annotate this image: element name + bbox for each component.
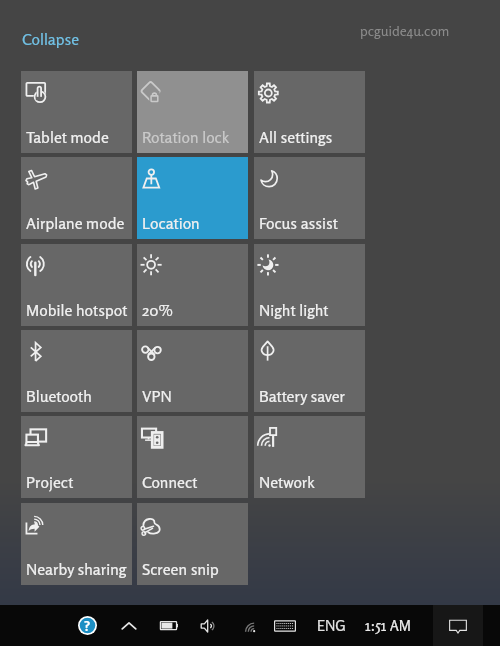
staticText: Collapse	[22, 30, 80, 49]
button[interactable]: Airplane mode	[21, 157, 132, 239]
staticText: ENG	[317, 617, 346, 635]
staticText: Airplane mode	[26, 214, 125, 233]
staticText: Bluetooth	[26, 387, 92, 406]
staticText: Night light	[259, 301, 329, 320]
button[interactable]: Network	[254, 416, 365, 498]
staticText: Battery saver	[259, 387, 346, 406]
staticText: Location	[142, 214, 200, 233]
staticText: Connect	[142, 473, 198, 492]
button[interactable]: Battery saver	[254, 330, 365, 412]
button[interactable]: 20%	[137, 244, 248, 326]
staticText: 20%	[142, 301, 173, 320]
staticText: Rotation lock	[142, 128, 230, 147]
staticText: Project	[26, 473, 74, 492]
button[interactable]: Action Center	[433, 605, 483, 646]
staticText: 1:51 AM	[365, 617, 411, 635]
staticText: ?	[84, 617, 91, 634]
button[interactable]: Network	[233, 605, 267, 646]
staticText: Focus assist	[259, 214, 338, 233]
button[interactable]: Project	[21, 416, 132, 498]
button[interactable]: All settings	[254, 71, 365, 153]
staticText: VPN	[142, 387, 172, 406]
button[interactable]: Screen snip	[137, 503, 248, 585]
button[interactable]: Focus assist	[254, 157, 365, 239]
staticText: Nearby sharing	[26, 560, 127, 579]
button[interactable]: Location	[137, 157, 248, 239]
button[interactable]: Show hidden icons	[112, 605, 146, 646]
button[interactable]: VPN	[137, 330, 248, 412]
button[interactable]: Bluetooth	[21, 330, 132, 412]
button[interactable]: Night light	[254, 244, 365, 326]
staticText: Mobile hotspot	[26, 301, 128, 320]
button[interactable]: Battery	[152, 605, 186, 646]
staticText: All settings	[259, 128, 333, 147]
button[interactable]: Help	[70, 605, 104, 646]
button[interactable]: Volume	[192, 605, 226, 646]
button[interactable]: Connect	[137, 416, 248, 498]
button[interactable]: Collapse	[16, 26, 86, 53]
staticText: Network	[259, 473, 315, 492]
button[interactable]: Mobile hotspot	[21, 244, 132, 326]
staticText: Screen snip	[142, 560, 219, 579]
staticText: pcguide4u.com	[360, 22, 450, 39]
button[interactable]: Tablet mode	[21, 71, 132, 153]
staticText: Tablet mode	[26, 128, 109, 147]
button[interactable]: Keyboard	[268, 605, 302, 646]
button[interactable]: Nearby sharing	[21, 503, 132, 585]
button[interactable]: Rotation lock	[137, 71, 248, 153]
